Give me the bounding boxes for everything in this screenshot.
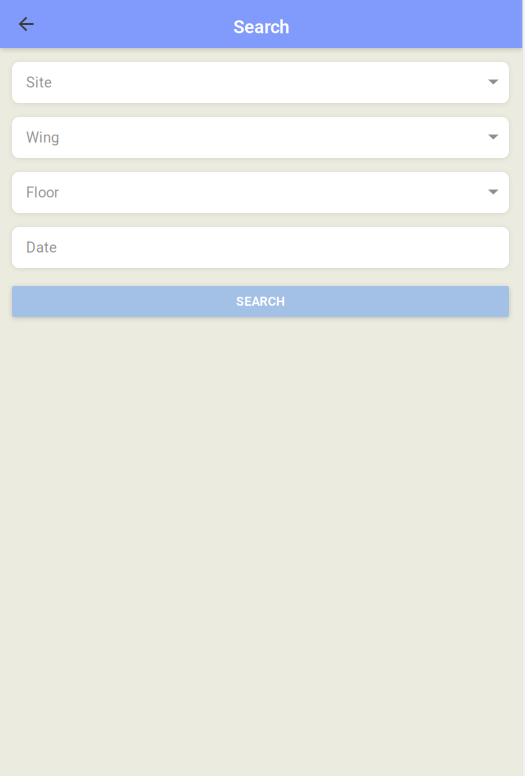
staticText: SEARCH <box>236 294 285 309</box>
button[interactable]: Floor <box>12 172 509 213</box>
button[interactable]: Wing <box>12 117 509 158</box>
staticText: Search <box>233 16 289 38</box>
staticText: Wing <box>26 129 59 146</box>
button[interactable]: Site <box>12 62 509 103</box>
button[interactable]: Back <box>9 7 43 41</box>
staticText: Site <box>26 74 52 91</box>
button[interactable]: SEARCH <box>12 286 509 317</box>
staticText: Floor <box>26 184 59 201</box>
button[interactable]: Date <box>12 227 509 268</box>
staticText: Date <box>26 239 57 256</box>
